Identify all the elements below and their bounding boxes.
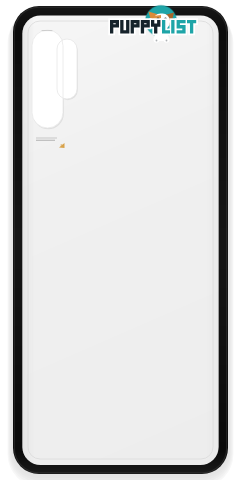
button[interactable]: Phone case product photo — [0, 0, 241, 480]
